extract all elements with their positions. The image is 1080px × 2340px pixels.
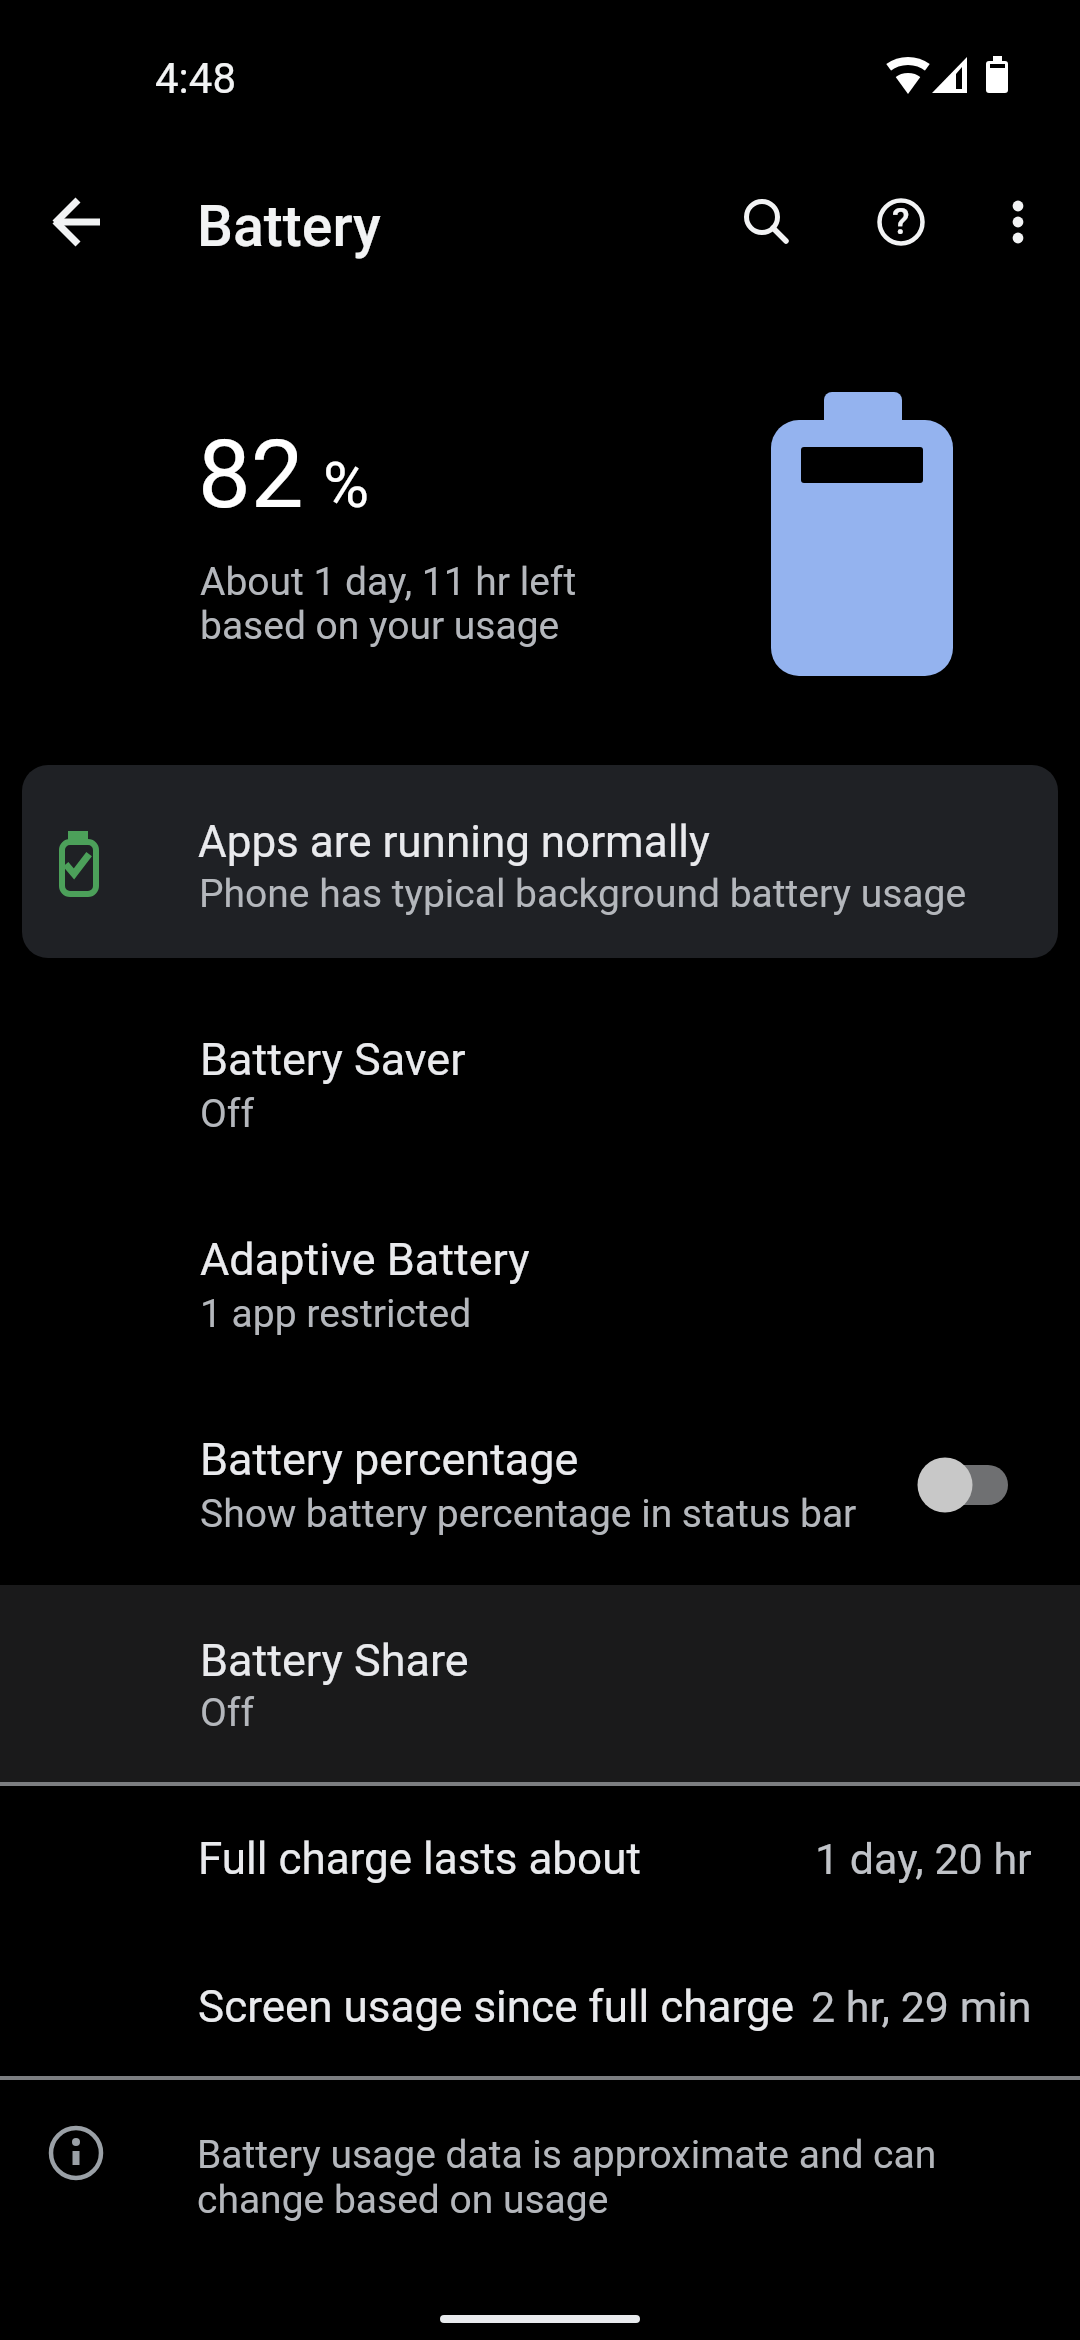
staticText: Apps are running normally <box>198 816 710 868</box>
staticText: 82 <box>198 420 304 530</box>
button[interactable] <box>0 1205 1080 1375</box>
button[interactable] <box>22 765 1058 958</box>
button[interactable] <box>0 1005 1080 1175</box>
staticText: change based on usage <box>197 2177 609 2223</box>
staticText: Show battery percentage in status bar <box>200 1491 857 1537</box>
button[interactable] <box>0 1963 1080 2081</box>
staticText: Battery Share <box>200 1634 469 1687</box>
staticText: Battery Saver <box>200 1033 466 1086</box>
staticText: Off <box>200 1091 254 1137</box>
staticText: Adaptive Battery <box>200 1233 530 1286</box>
staticText: Battery usage data is approximate and ca… <box>197 2132 937 2178</box>
staticText: Phone has typical background battery usa… <box>199 871 967 917</box>
button[interactable] <box>0 1815 1080 1933</box>
staticText: 2 hr, 29 min <box>811 1982 1032 2032</box>
staticText: % <box>323 449 370 523</box>
button[interactable] <box>0 1585 1080 1782</box>
button[interactable] <box>30 174 126 270</box>
staticText: Battery percentage <box>200 1433 579 1486</box>
staticText: ? <box>892 201 910 243</box>
staticText: Battery <box>197 193 381 260</box>
staticText: Full charge lasts about <box>198 1833 641 1885</box>
staticText: 1 app restricted <box>200 1291 472 1337</box>
staticText: Off <box>200 1690 254 1736</box>
button[interactable]: ? <box>853 174 949 270</box>
staticText: Screen usage since full charge <box>198 1981 794 2033</box>
button[interactable] <box>969 174 1065 270</box>
button[interactable] <box>0 1405 1080 1575</box>
staticText: About 1 day, 11 hr left <box>200 559 577 605</box>
button[interactable] <box>717 174 813 270</box>
staticText: based on your usage <box>200 603 560 649</box>
staticText: 4:48 <box>155 54 236 103</box>
staticText: 1 day, 20 hr <box>815 1834 1032 1884</box>
